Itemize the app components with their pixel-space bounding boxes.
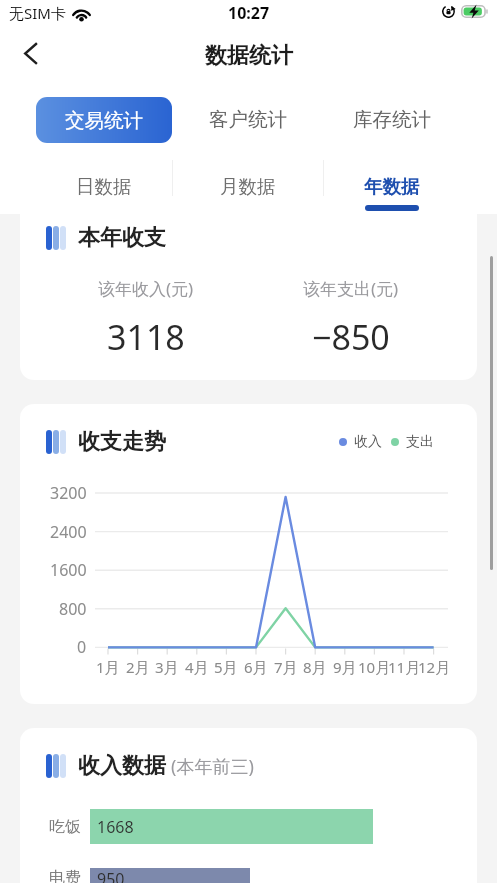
staticText: 该年收入(元) bbox=[98, 277, 194, 300]
staticText: 800 bbox=[59, 598, 87, 620]
staticText: 11月 bbox=[388, 657, 421, 677]
staticText: 6月 bbox=[244, 657, 268, 677]
staticText: 无SIM卡 bbox=[9, 3, 66, 23]
staticText: 10月 bbox=[358, 657, 391, 677]
staticText: 950 bbox=[97, 868, 125, 883]
staticText: 本年收支 bbox=[78, 224, 166, 252]
staticText: 4月 bbox=[185, 657, 209, 677]
button[interactable]: 年数据 bbox=[320, 144, 464, 214]
staticText: 收入 bbox=[354, 433, 382, 451]
staticText: 10:27 bbox=[228, 2, 270, 24]
button[interactable]: 库存统计 bbox=[320, 95, 464, 144]
staticText: 吃饭 bbox=[49, 817, 81, 837]
staticText: 3月 bbox=[155, 657, 179, 677]
staticText: 2400 bbox=[50, 521, 87, 543]
staticText: 交易统计 bbox=[65, 108, 143, 133]
staticText: 年数据 bbox=[364, 175, 420, 198]
staticText: 收支走势 bbox=[78, 428, 166, 456]
staticText: 电费 bbox=[49, 868, 81, 883]
staticText: −850 bbox=[312, 314, 390, 360]
staticText: 收入数据 bbox=[78, 752, 166, 780]
staticText: 7月 bbox=[274, 657, 298, 677]
button[interactable]: 月数据 bbox=[176, 144, 320, 214]
staticText: 9月 bbox=[333, 657, 357, 677]
staticText: 5月 bbox=[214, 657, 238, 677]
staticText: 该年支出(元) bbox=[303, 277, 399, 300]
staticText: 库存统计 bbox=[353, 107, 431, 132]
staticText: 支出 bbox=[406, 433, 434, 451]
staticText: (本年前三) bbox=[171, 754, 254, 779]
staticText: 8月 bbox=[303, 657, 327, 677]
staticText: 日数据 bbox=[76, 175, 132, 198]
staticText: 1600 bbox=[50, 559, 87, 581]
button[interactable]: 交易统计 bbox=[36, 97, 172, 143]
staticText: 数据统计 bbox=[205, 42, 293, 70]
staticText: 1668 bbox=[97, 816, 134, 838]
staticText: 3118 bbox=[107, 314, 185, 360]
staticText: 3200 bbox=[50, 482, 87, 504]
staticText: 客户统计 bbox=[209, 107, 287, 132]
staticText: 2月 bbox=[126, 657, 150, 677]
staticText: 1月 bbox=[96, 657, 120, 677]
button[interactable]: 日数据 bbox=[32, 144, 176, 214]
button[interactable]: 客户统计 bbox=[176, 95, 320, 144]
staticText: 0 bbox=[77, 636, 87, 658]
staticText: 月数据 bbox=[220, 175, 276, 198]
button[interactable]: Back bbox=[8, 37, 52, 81]
staticText: 12月 bbox=[418, 657, 451, 677]
